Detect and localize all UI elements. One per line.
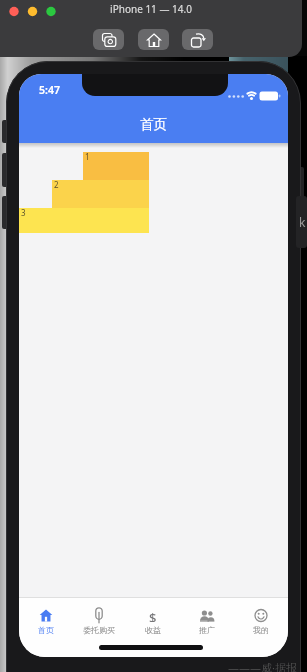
staticText: iPhone 11 — 14.0: [0, 2, 302, 16]
staticText: 收益: [145, 625, 161, 635]
button[interactable]: 首页: [19, 609, 72, 657]
button[interactable]: 推广: [180, 609, 234, 657]
button[interactable]: [182, 29, 213, 50]
staticText: $: [149, 609, 157, 622]
button[interactable]: [138, 29, 169, 50]
staticText: 首页: [140, 116, 167, 133]
staticText: 5:47: [39, 83, 60, 97]
staticText: 推广: [199, 625, 215, 635]
staticText: 2: [54, 179, 59, 190]
button[interactable]: [93, 29, 124, 50]
staticText: k: [299, 214, 306, 230]
staticText: 我的: [253, 625, 269, 635]
staticText: 1: [85, 151, 90, 162]
staticText: 首页: [38, 625, 54, 635]
staticText: 委托购买: [83, 625, 115, 635]
button[interactable]: $: [126, 609, 180, 657]
button[interactable]: 委托购买: [72, 609, 126, 657]
staticText: ———威·据报: [228, 660, 297, 672]
staticText: 3: [21, 207, 26, 218]
button[interactable]: 我的: [234, 609, 288, 657]
